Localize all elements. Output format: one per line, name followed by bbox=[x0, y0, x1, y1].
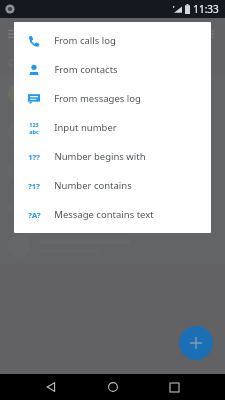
staticText: Number begins with bbox=[54, 150, 146, 163]
staticText: From contacts bbox=[54, 63, 118, 76]
button[interactable]: S bbox=[184, 18, 204, 49]
button[interactable]: From calls log bbox=[14, 26, 211, 55]
button[interactable]: BLACKLIST bbox=[86, 18, 148, 49]
staticText: 1?? bbox=[28, 152, 40, 162]
button[interactable]: Toggle bbox=[33, 55, 55, 69]
staticText: Number contains bbox=[54, 179, 132, 192]
button[interactable]: 123 bbox=[14, 113, 211, 142]
button[interactable]: Add blacklist entry bbox=[179, 326, 213, 360]
button[interactable]: Expand filters bbox=[197, 52, 217, 72]
staticText: ?A? bbox=[28, 210, 41, 220]
staticText: 11:33 bbox=[193, 2, 219, 16]
button[interactable]: Recent apps bbox=[163, 376, 185, 398]
button[interactable]: Back bbox=[40, 376, 62, 398]
button[interactable]: From messages log bbox=[14, 84, 211, 113]
staticText: abc bbox=[29, 128, 39, 135]
button[interactable]: ?1? bbox=[14, 171, 211, 200]
button[interactable]: More options bbox=[201, 22, 225, 46]
button[interactable]: LOG bbox=[148, 18, 184, 49]
staticText: Message contains text bbox=[54, 208, 154, 221]
button[interactable]: 1?? bbox=[14, 142, 211, 171]
button[interactable]: Home bbox=[102, 376, 124, 398]
button[interactable]: Open navigation menu bbox=[0, 19, 30, 49]
button[interactable]: SMS bbox=[48, 18, 86, 49]
staticText: From messages log bbox=[54, 92, 141, 105]
staticText: Calls bbox=[8, 56, 28, 68]
staticText: From calls log bbox=[54, 34, 116, 47]
button[interactable]: Toggle bbox=[93, 55, 115, 69]
staticText: 123 bbox=[29, 121, 39, 128]
staticText: ?1? bbox=[28, 181, 40, 191]
button[interactable]: ?A? bbox=[14, 200, 211, 229]
button[interactable]: From contacts bbox=[14, 55, 211, 84]
staticText: Input number bbox=[54, 121, 117, 134]
staticText: BLACKLIST bbox=[95, 28, 139, 38]
